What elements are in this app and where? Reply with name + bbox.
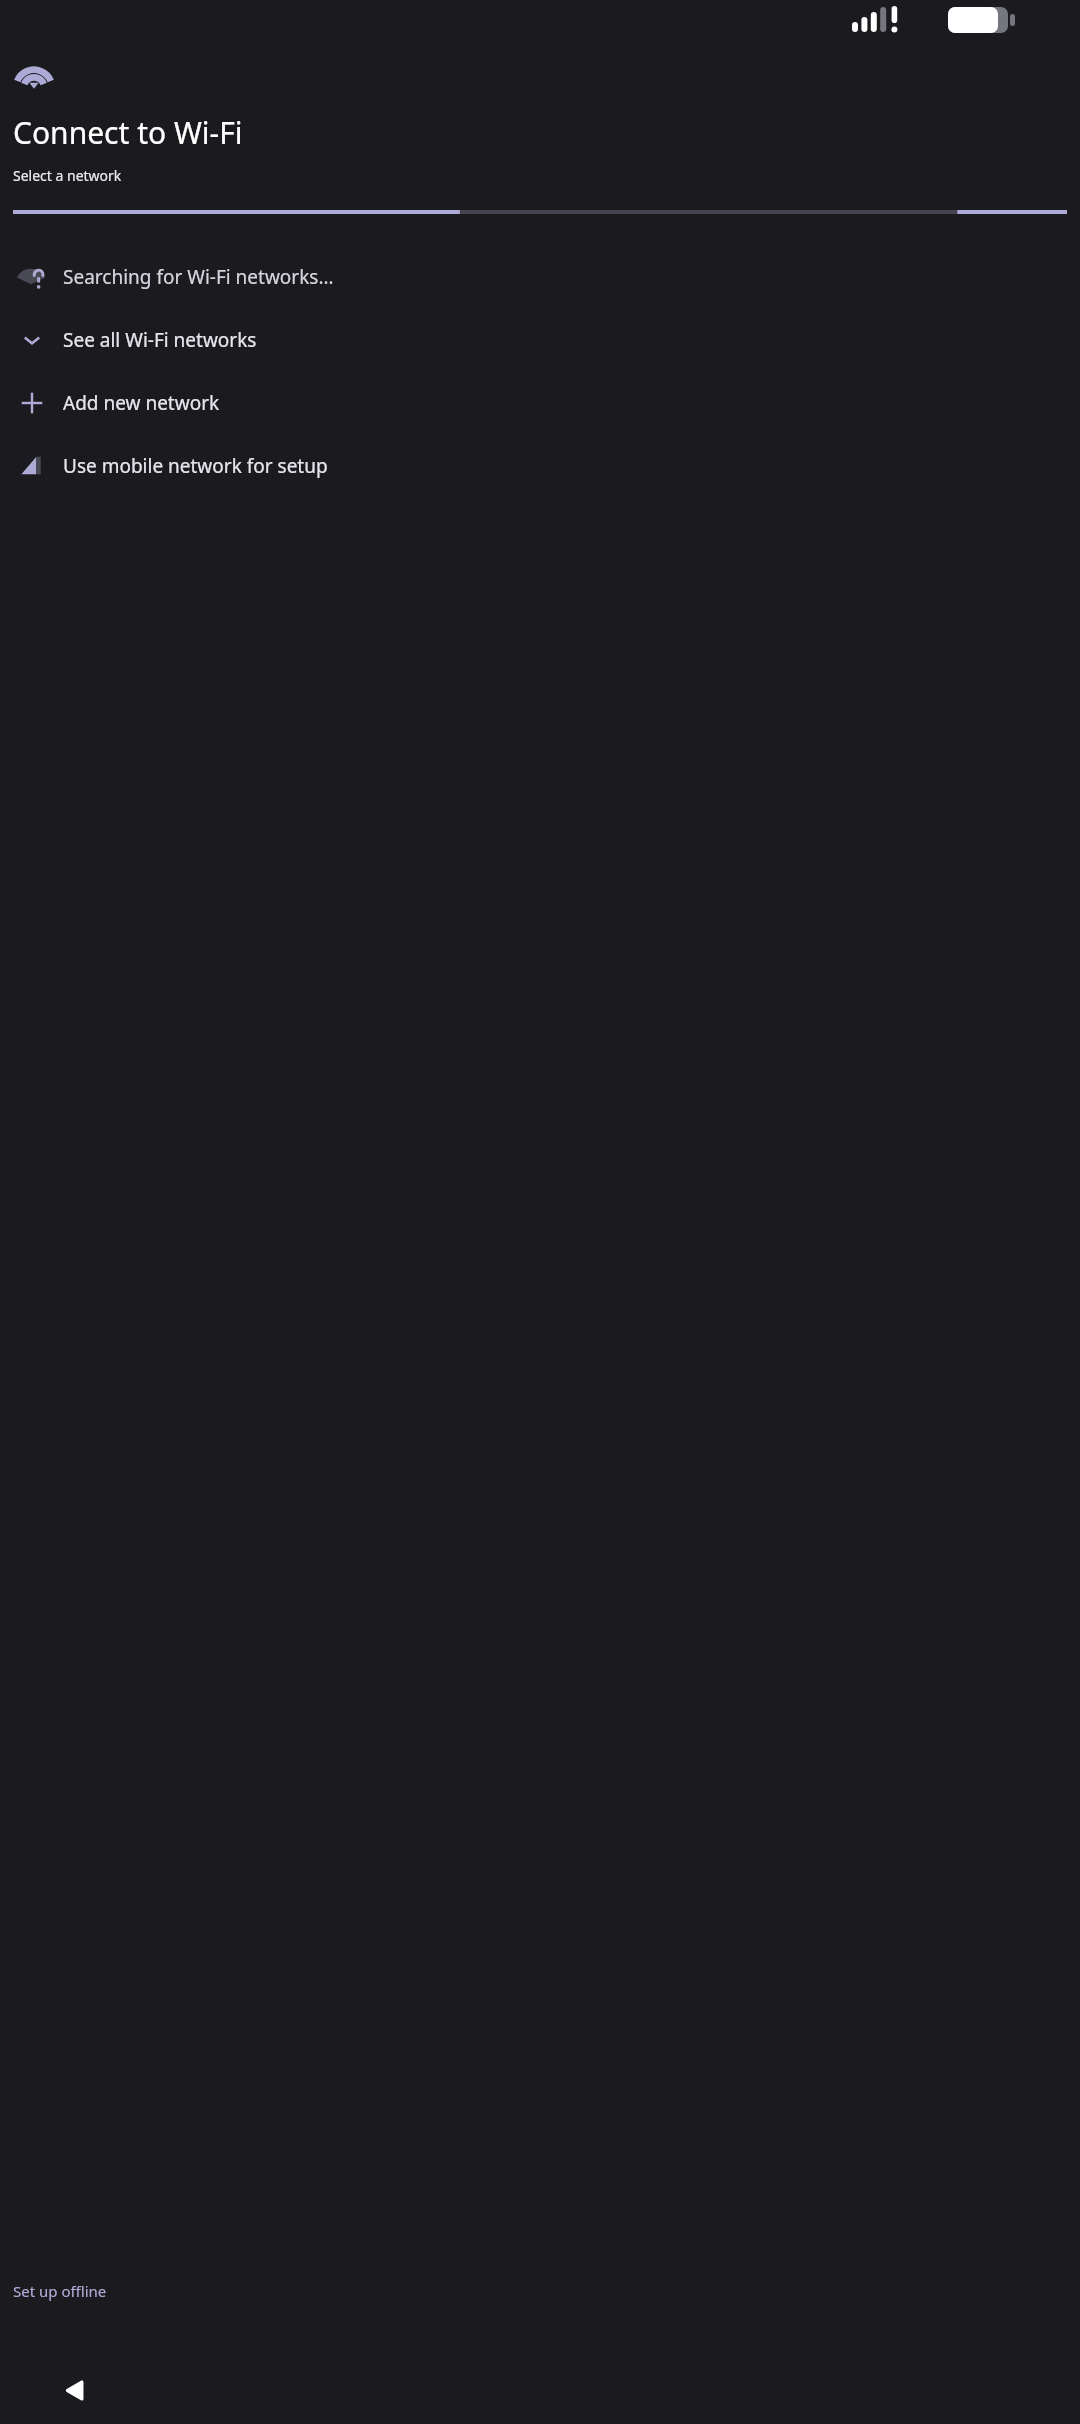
- staticText: Searching for Wi-Fi networks…: [63, 264, 334, 290]
- button[interactable]: Set up offline: [13, 2281, 107, 2301]
- button[interactable]: See all Wi-Fi networks: [0, 308, 1080, 371]
- button[interactable]: Use mobile network for setup: [0, 434, 1080, 497]
- button[interactable]: Back: [54, 2369, 96, 2411]
- staticText: Select a network: [13, 166, 122, 185]
- button[interactable]: Searching for Wi-Fi networks…: [0, 245, 1080, 308]
- staticText: See all Wi-Fi networks: [63, 327, 257, 353]
- staticText: Connect to Wi-Fi: [13, 112, 243, 153]
- staticText: Use mobile network for setup: [63, 453, 328, 479]
- staticText: Add new network: [63, 390, 220, 416]
- button[interactable]: Add new network: [0, 371, 1080, 434]
